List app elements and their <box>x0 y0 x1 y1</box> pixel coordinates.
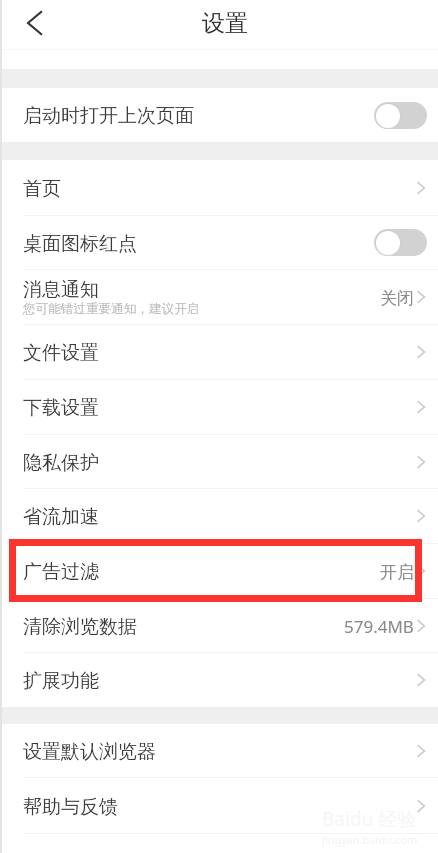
button[interactable]: Toggle <box>374 102 427 129</box>
button[interactable]: 文件设置 <box>0 325 438 379</box>
staticText: 开启 <box>380 562 414 583</box>
staticText: 设置默认浏览器 <box>23 740 156 764</box>
staticText: Baidu 经验 <box>322 806 417 832</box>
button[interactable]: 消息通知 <box>0 270 438 324</box>
staticText: 扩展功能 <box>23 669 99 693</box>
button[interactable]: 省流加速 <box>0 489 438 543</box>
button[interactable]: 扩展功能 <box>0 653 438 707</box>
staticText: 广告过滤 <box>23 560 99 584</box>
button[interactable]: 启动时打开上次页面 <box>0 88 438 142</box>
button[interactable]: 广告过滤 <box>0 544 438 598</box>
button[interactable]: 隐私保护 <box>0 435 438 488</box>
button[interactable]: 下载设置 <box>0 380 438 434</box>
button[interactable]: 帮助与反馈 <box>0 778 438 833</box>
button[interactable]: Back <box>18 6 52 40</box>
staticText: 您可能错过重要通知，建议开启 <box>23 301 200 317</box>
staticText: 下载设置 <box>23 396 99 420</box>
staticText: 文件设置 <box>23 341 99 365</box>
button[interactable]: 清除浏览数据 <box>0 599 438 652</box>
staticText: 桌面图标红点 <box>23 232 137 256</box>
staticText: jingyan.baidu.com <box>322 832 418 847</box>
staticText: 设置 <box>202 9 248 38</box>
button[interactable]: 桌面图标红点 <box>0 216 438 269</box>
staticText: 关闭 <box>380 288 414 309</box>
staticText: 清除浏览数据 <box>23 615 137 639</box>
button[interactable]: 首页 <box>0 160 438 215</box>
staticText: 579.4MB <box>344 615 414 638</box>
staticText: 隐私保护 <box>23 451 99 475</box>
staticText: 首页 <box>23 177 61 201</box>
staticText: 消息通知 <box>23 278 99 302</box>
staticText: 帮助与反馈 <box>23 795 118 819</box>
button[interactable]: 设置默认浏览器 <box>0 724 438 777</box>
button[interactable]: Toggle <box>374 229 427 256</box>
staticText: 省流加速 <box>23 505 99 529</box>
staticText: 启动时打开上次页面 <box>23 104 194 128</box>
